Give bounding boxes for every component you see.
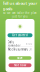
- staticText: 8:00: [25, 42, 32, 46]
- button[interactable]: Not now: [8, 63, 31, 67]
- staticText: Get started: [12, 33, 28, 37]
- staticText: Daily reminder: [7, 40, 20, 48]
- staticText: On: [28, 48, 32, 51]
- button[interactable]: Get started: [7, 33, 32, 37]
- button[interactable]: Save: [8, 56, 31, 60]
- staticText: just for you: [12, 15, 28, 18]
- staticText: Weekly summary: [7, 48, 27, 51]
- staticText: Save: [17, 56, 23, 60]
- staticText: Not now: [14, 63, 26, 67]
- staticText: so we can tailor the plan: [3, 11, 37, 15]
- staticText: Tell us about your goals: [2, 1, 37, 11]
